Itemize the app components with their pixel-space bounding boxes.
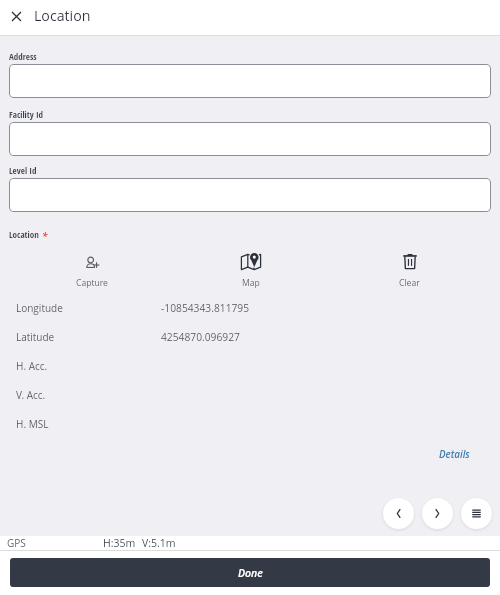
staticText: Done	[238, 566, 263, 580]
staticText: -10854343.811795	[161, 301, 250, 315]
button[interactable]: H. MSL	[0, 409, 500, 438]
button[interactable]: Menu	[461, 498, 492, 529]
staticText: Longitude	[16, 301, 63, 315]
button[interactable]: H. Acc.	[0, 351, 500, 380]
button[interactable]: Capture	[13, 250, 171, 289]
staticText: Latitude	[16, 330, 55, 344]
button[interactable]: Done	[10, 558, 490, 587]
staticText: H. MSL	[16, 417, 49, 431]
staticText: Facility Id	[9, 108, 44, 120]
button[interactable]: Details	[429, 444, 480, 465]
button[interactable]: Close	[0, 1, 33, 34]
staticText: Clear	[399, 277, 420, 289]
staticText: Level Id	[9, 164, 37, 176]
staticText: GPS	[7, 536, 26, 550]
staticText: Location	[34, 6, 91, 25]
staticText: V:5.1m	[142, 536, 176, 550]
button[interactable]	[9, 64, 491, 98]
staticText: V. Acc.	[16, 388, 46, 402]
staticText: H:35m	[103, 536, 136, 550]
button[interactable]	[9, 178, 491, 212]
button[interactable]: Next	[422, 498, 453, 529]
staticText: H. Acc.	[16, 359, 48, 373]
staticText: 4254870.096927	[161, 330, 240, 344]
staticText: Details	[439, 448, 470, 461]
button[interactable]: V. Acc.	[0, 380, 500, 409]
button[interactable]	[9, 122, 491, 156]
button[interactable]: Map	[171, 250, 330, 289]
button[interactable]: Longitude	[0, 293, 500, 322]
staticText: *	[42, 229, 48, 243]
button[interactable]: Previous	[383, 498, 414, 529]
staticText: Capture	[76, 277, 108, 289]
staticText: Address	[9, 50, 37, 62]
staticText: Map	[242, 277, 260, 289]
button[interactable]: Latitude	[0, 322, 500, 351]
button[interactable]: Clear	[330, 250, 489, 289]
staticText: Location	[9, 228, 39, 240]
